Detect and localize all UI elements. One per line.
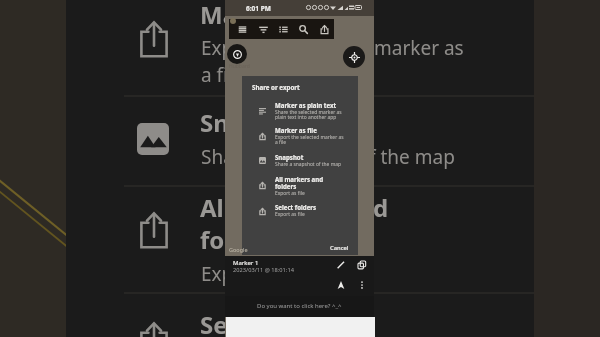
staticText: Marker as file xyxy=(275,126,317,134)
staticText: Exp xyxy=(201,261,234,287)
button[interactable]: Markers list xyxy=(273,19,293,39)
staticText: marker as xyxy=(374,35,464,61)
staticText: f the map xyxy=(369,144,455,170)
staticText: Snapshot xyxy=(275,153,304,161)
button[interactable]: Cancel xyxy=(327,242,352,254)
button[interactable]: Search xyxy=(293,19,313,39)
staticText: Select folders xyxy=(275,203,317,211)
staticText: d xyxy=(373,191,389,224)
staticText: Exp xyxy=(201,35,234,61)
staticText: Share or export xyxy=(252,83,300,91)
staticText: Export as file xyxy=(275,211,305,218)
staticText: Ma xyxy=(200,0,238,31)
button[interactable]: Menu xyxy=(232,19,252,39)
button[interactable]: More options xyxy=(355,278,369,292)
staticText: fo xyxy=(200,223,225,256)
button[interactable] xyxy=(242,122,358,146)
button[interactable]: Edit xyxy=(334,258,348,272)
staticText: Sha xyxy=(201,144,234,170)
button[interactable] xyxy=(242,171,358,199)
staticText: Do you want to click here? ^_^ xyxy=(257,302,342,310)
button[interactable]: Copy xyxy=(355,258,369,272)
staticText: Share a snapshot of the map xyxy=(275,161,341,168)
button[interactable] xyxy=(242,149,358,173)
staticText: Google xyxy=(229,246,248,253)
staticText: Hubbard xyxy=(229,63,250,70)
staticText: 2023/03/11 @ 18:01:14 xyxy=(233,266,294,274)
staticText: Export as file xyxy=(275,190,305,197)
staticText: Al xyxy=(200,191,224,224)
staticText: Marker as plain text xyxy=(275,101,337,109)
staticText: Marker 1 xyxy=(233,259,259,267)
staticText: Share the selected marker as plain text … xyxy=(275,109,342,121)
button[interactable] xyxy=(242,97,358,121)
button[interactable]: Navigate xyxy=(334,278,348,292)
button[interactable]: My location xyxy=(343,46,365,68)
button[interactable]: Share xyxy=(314,19,334,39)
staticText: Export the selected marker as a file xyxy=(275,134,344,146)
button[interactable] xyxy=(242,199,358,223)
button[interactable]: Compass xyxy=(227,44,247,64)
staticText: a fi xyxy=(201,62,229,88)
button[interactable]: Map layers xyxy=(253,19,273,39)
staticText: Cancel xyxy=(330,244,349,252)
staticText: All markers and folders xyxy=(275,175,323,190)
staticText: 6:01 PM xyxy=(246,4,271,13)
staticText: Sn xyxy=(200,106,229,139)
staticText: Se xyxy=(200,308,228,337)
